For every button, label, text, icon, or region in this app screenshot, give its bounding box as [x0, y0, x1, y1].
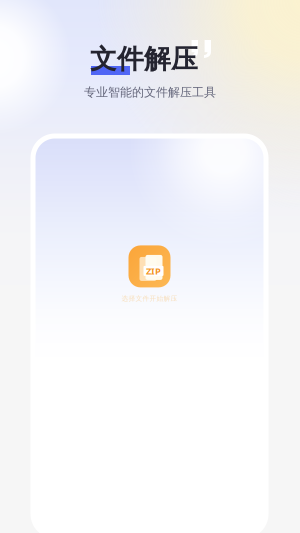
staticText: 专业智能的文件解压工具 [84, 85, 216, 100]
staticText: 文件解压 [90, 43, 198, 75]
staticText: ZIP [146, 265, 161, 277]
button[interactable]: ZIP [94, 243, 204, 305]
staticText: 选择文件开始解压 [121, 294, 177, 303]
